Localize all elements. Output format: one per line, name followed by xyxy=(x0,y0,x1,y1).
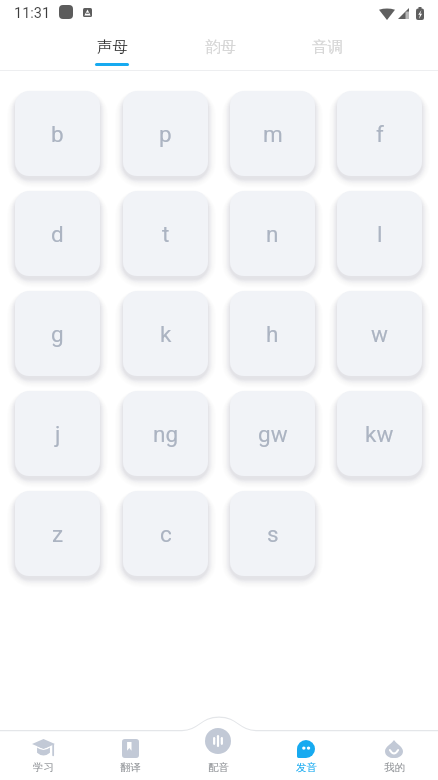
staticText: c xyxy=(160,521,172,547)
button[interactable]: n xyxy=(230,191,315,276)
staticText: 配音 xyxy=(208,761,229,774)
button[interactable]: s xyxy=(230,491,315,576)
staticText: f xyxy=(376,121,384,147)
staticText: 学习 xyxy=(33,761,54,774)
button[interactable]: b xyxy=(15,91,100,176)
staticText: p xyxy=(159,121,172,147)
staticText: b xyxy=(51,121,64,147)
staticText: g xyxy=(51,321,64,347)
staticText: 发音 xyxy=(296,761,317,774)
button[interactable]: c xyxy=(123,491,208,576)
staticText: w xyxy=(371,321,388,347)
button[interactable]: g xyxy=(15,291,100,376)
button[interactable]: j xyxy=(15,391,100,476)
button[interactable]: 翻译 xyxy=(87,730,174,780)
staticText: 11:31 xyxy=(14,5,51,22)
button[interactable]: 配音 xyxy=(174,730,262,780)
staticText: kw xyxy=(365,421,394,447)
button[interactable]: gw xyxy=(230,391,315,476)
staticText: 音调 xyxy=(312,37,343,57)
button[interactable]: l xyxy=(337,191,422,276)
button[interactable]: m xyxy=(230,91,315,176)
button[interactable]: p xyxy=(123,91,208,176)
button[interactable]: d xyxy=(15,191,100,276)
button[interactable]: h xyxy=(230,291,315,376)
staticText: ng xyxy=(153,421,179,447)
staticText: s xyxy=(267,521,279,547)
staticText: m xyxy=(263,121,283,147)
button[interactable]: ng xyxy=(123,391,208,476)
staticText: d xyxy=(51,221,64,247)
button[interactable]: 音调 xyxy=(273,26,380,71)
staticText: j xyxy=(55,421,61,447)
button[interactable]: k xyxy=(123,291,208,376)
button[interactable]: f xyxy=(337,91,422,176)
staticText: gw xyxy=(258,421,288,447)
button[interactable]: 发音 xyxy=(262,730,350,780)
staticText: 我的 xyxy=(384,761,405,774)
button[interactable]: 学习 xyxy=(0,730,87,780)
staticText: z xyxy=(52,521,64,547)
staticText: k xyxy=(160,321,172,347)
staticText: h xyxy=(266,321,279,347)
button[interactable]: kw xyxy=(337,391,422,476)
button[interactable]: z xyxy=(15,491,100,576)
staticText: t xyxy=(162,221,170,247)
button[interactable]: 韵母 xyxy=(166,26,273,71)
staticText: 翻译 xyxy=(120,761,141,774)
staticText: l xyxy=(377,221,383,247)
button[interactable]: 我的 xyxy=(350,730,438,780)
button[interactable]: t xyxy=(123,191,208,276)
staticText: n xyxy=(266,221,279,247)
button[interactable]: 声母 xyxy=(58,26,166,71)
staticText: 韵母 xyxy=(205,37,236,57)
button[interactable]: w xyxy=(337,291,422,376)
staticText: 声母 xyxy=(97,37,128,57)
